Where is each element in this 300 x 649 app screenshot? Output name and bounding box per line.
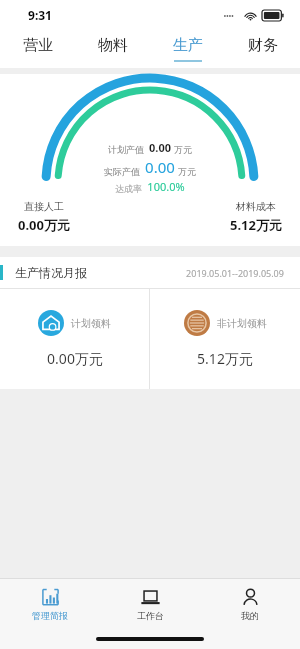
staticText: 材料成本 [236, 200, 276, 213]
staticText: 计划领料 [71, 317, 111, 330]
staticText: 我的 [241, 610, 259, 621]
staticText: 5.12万元 [230, 216, 282, 234]
staticText: 计划产值 [108, 144, 144, 155]
staticText: 生产情况月报 [15, 265, 87, 280]
staticText: 0.00万元 [47, 349, 103, 368]
staticText: 财务 [248, 36, 278, 55]
staticText: 物料 [98, 36, 128, 55]
other: 工作台 [141, 588, 160, 607]
staticText: 5.12万元 [197, 349, 253, 368]
staticText: 0.00 [149, 140, 171, 155]
staticText: 9:31 [28, 7, 52, 23]
other: 管理简报 [41, 588, 60, 607]
staticText: 工作台 [137, 610, 164, 621]
staticText: 万元 [174, 144, 192, 155]
staticText: 管理简报 [32, 610, 68, 621]
staticText: 100.0% [147, 179, 185, 194]
button[interactable]: 管理简报 [0, 579, 100, 629]
staticText: 生产 [173, 36, 203, 55]
button[interactable]: 工作台 [100, 579, 200, 629]
button[interactable]: 生产情况月报 [0, 257, 300, 288]
button[interactable]: 非计划领料 [150, 289, 300, 389]
staticText: 2019.05.01--2019.05.09 [186, 267, 284, 279]
button[interactable]: 营业 [0, 30, 75, 68]
staticText: 营业 [23, 36, 53, 55]
staticText: 达成率 [115, 183, 142, 194]
staticText: 0.00 [145, 157, 175, 177]
staticText: 直接人工 [24, 200, 64, 213]
other: 我的 [241, 588, 260, 607]
staticText: 0.00万元 [18, 216, 70, 234]
staticText: 非计划领料 [217, 317, 267, 330]
button[interactable]: 物料 [75, 30, 150, 68]
staticText: 万元 [178, 166, 196, 177]
button[interactable]: 生产 [150, 30, 225, 68]
button[interactable]: 计划领料 [0, 289, 149, 389]
button[interactable]: 财务 [225, 30, 300, 68]
button[interactable]: 我的 [200, 579, 300, 629]
staticText: 实际产值 [104, 166, 140, 177]
